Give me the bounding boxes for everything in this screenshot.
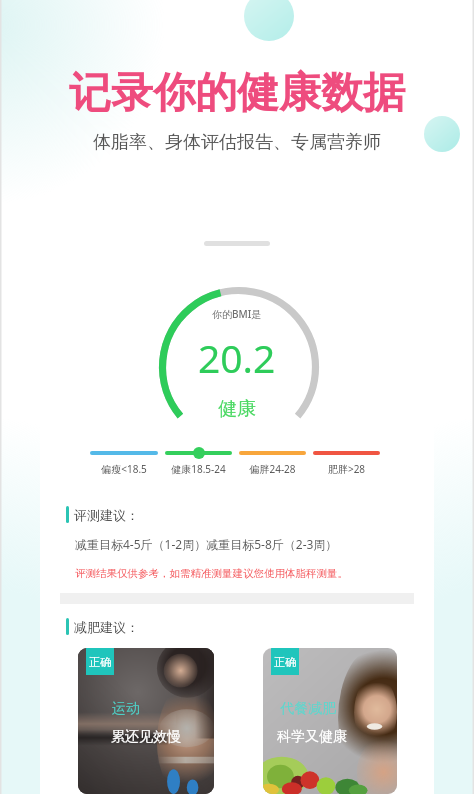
staticText: 科学又健康 [277, 728, 347, 746]
staticText: 运动 [112, 700, 140, 718]
staticText: 评测建议： [74, 507, 139, 523]
staticText: 偏瘦<18.5 [90, 462, 158, 476]
button[interactable]: 正确 [78, 648, 214, 794]
staticText: 减重目标4-5斤（1-2周）减重目标5-8斤（2-3周） [75, 536, 338, 552]
staticText: 减肥建议： [74, 619, 139, 635]
staticText: 20.2 [198, 331, 276, 384]
staticText: 健康18.5-24 [165, 462, 232, 476]
staticText: 累还见效慢 [111, 728, 181, 746]
staticText: 记录你的健康数据 [0, 67, 474, 120]
staticText: 正确 [274, 655, 296, 669]
staticText: 偏胖24-28 [239, 462, 306, 476]
staticText: 评测结果仅供参考，如需精准测量建议您使用体脂秤测量。 [75, 567, 348, 580]
staticText: 你的BMI是 [212, 307, 262, 321]
staticText: 代餐减肥 [280, 700, 336, 718]
staticText: 体脂率、身体评估报告、专属营养师 [0, 131, 474, 154]
staticText: 肥胖>28 [313, 462, 380, 476]
button[interactable]: 正确 [263, 648, 397, 794]
staticText: 健康 [218, 397, 256, 421]
staticText: 正确 [89, 655, 111, 669]
